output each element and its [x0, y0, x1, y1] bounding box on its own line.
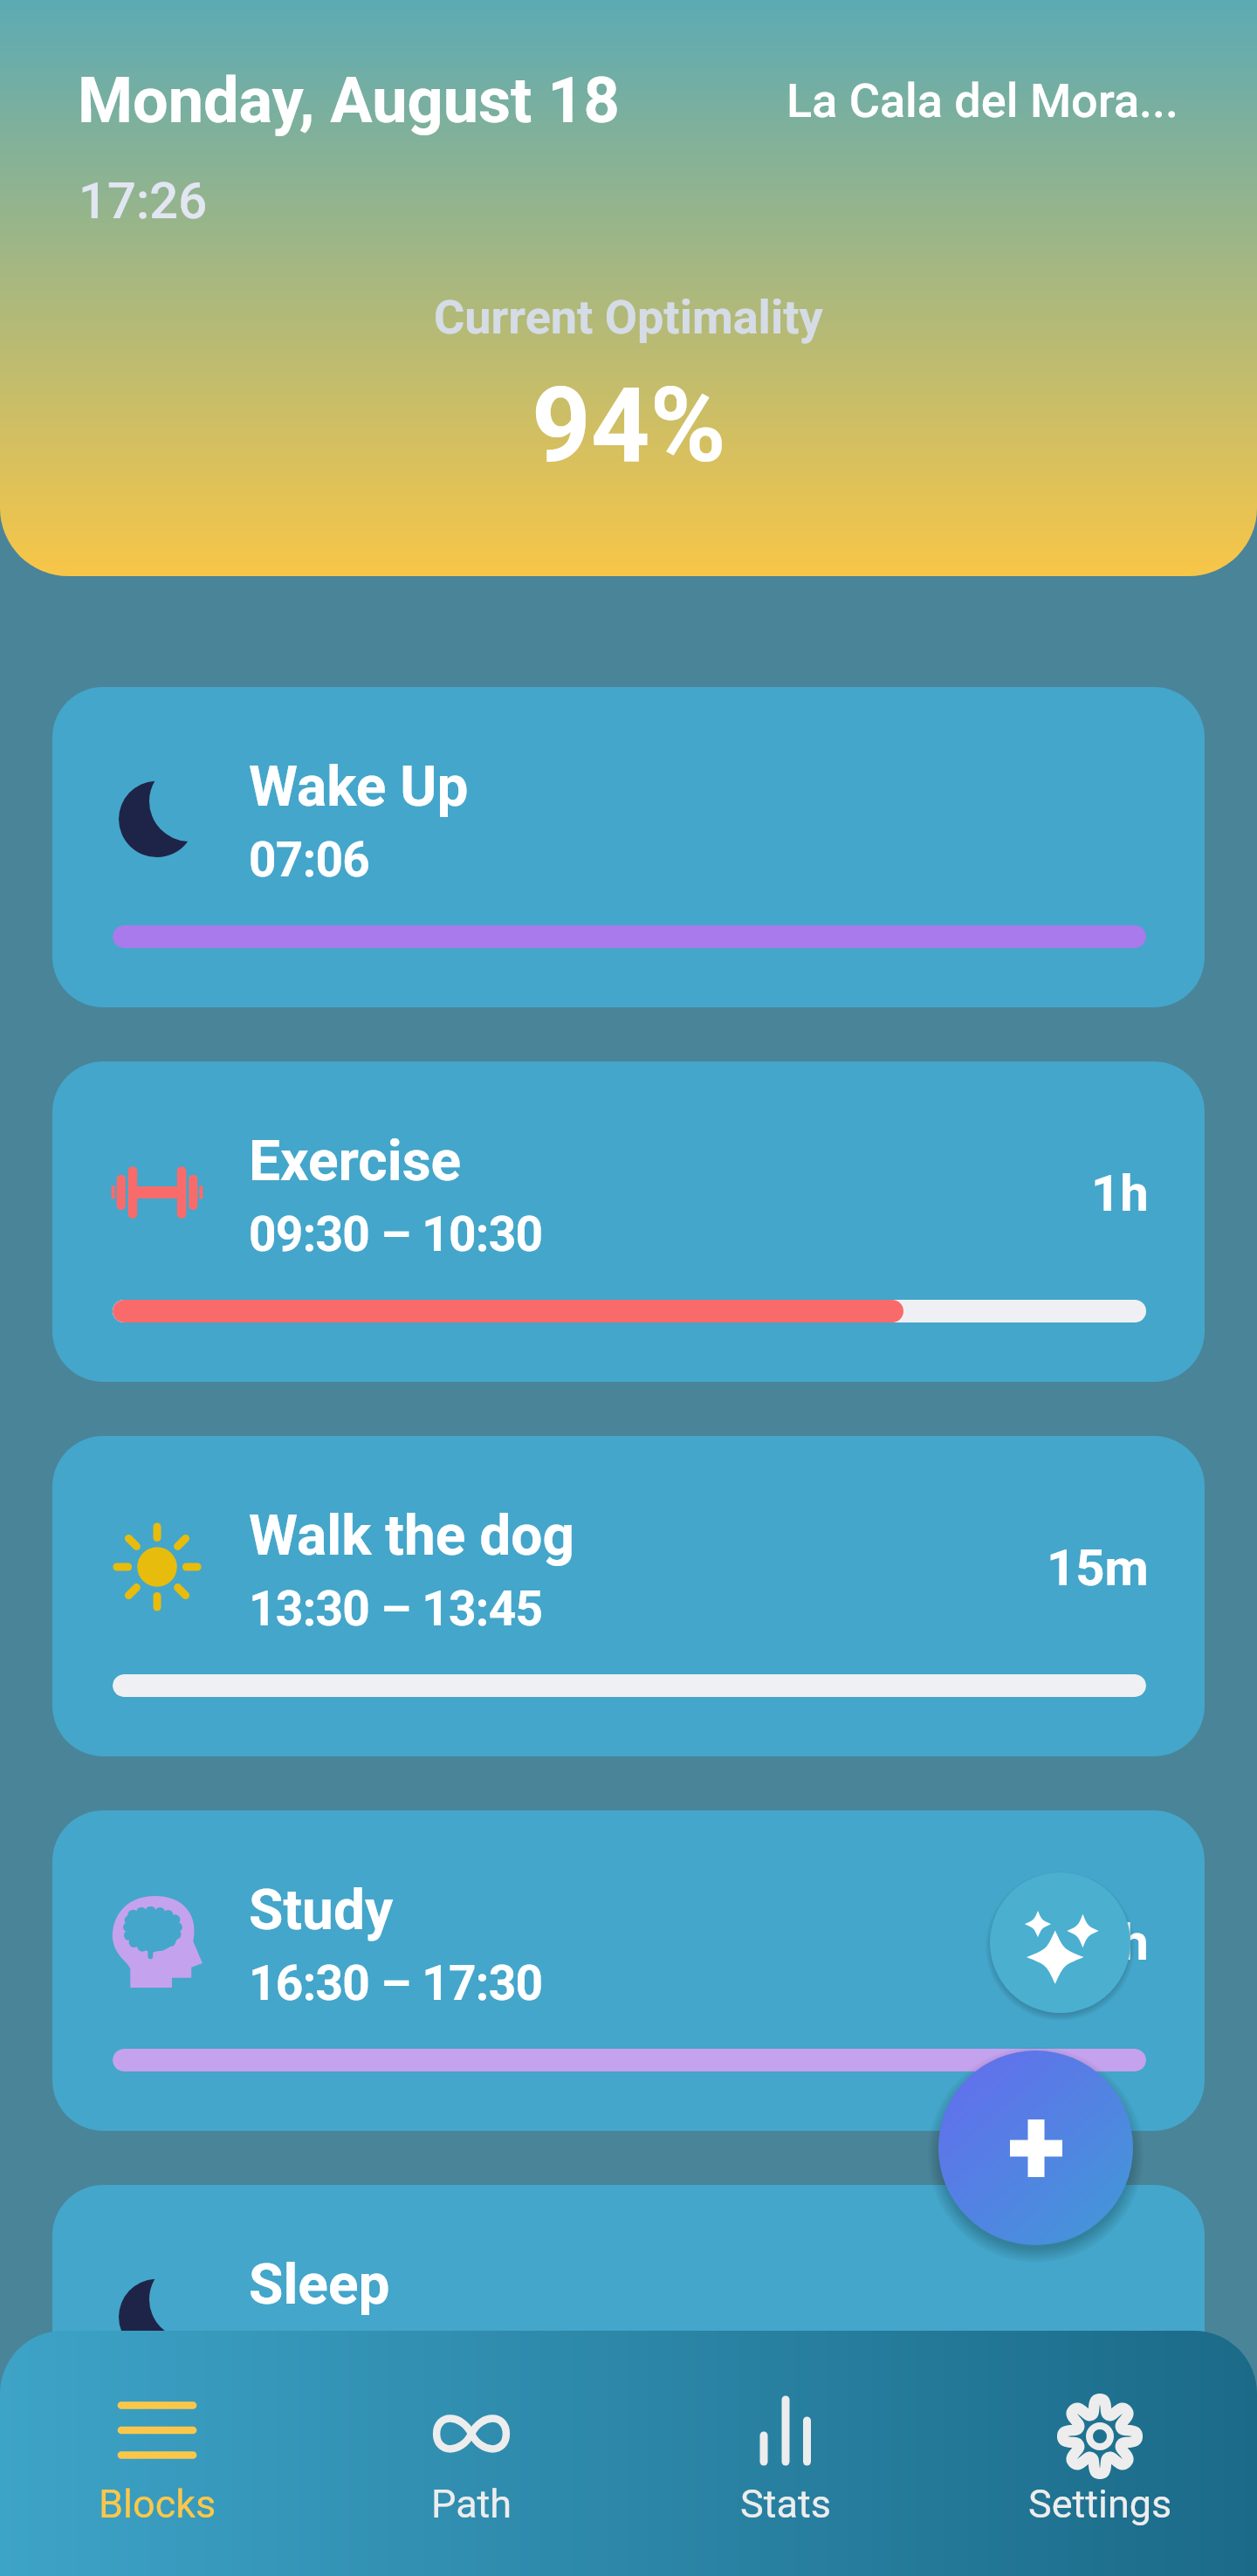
staticText: 23:00 – 07:00: [249, 2330, 543, 2386]
button[interactable]: Blocks: [0, 2331, 314, 2576]
staticText: La Cala del Mora...: [786, 73, 1178, 128]
staticText: Monday, August 18: [78, 64, 620, 137]
staticText: Settings: [1028, 2481, 1172, 2527]
staticText: Blocks: [99, 2481, 216, 2527]
button[interactable]: Settings: [943, 2331, 1257, 2576]
staticText: 07:06: [249, 832, 370, 888]
staticText: Study: [249, 1878, 394, 1943]
button[interactable]: Stats: [628, 2331, 943, 2576]
button[interactable]: Exercise: [52, 1061, 1205, 1382]
staticText: 15m: [1047, 1538, 1149, 1597]
button[interactable]: Sleep: [52, 2185, 1205, 2505]
staticText: Walk the dog: [249, 1503, 574, 1569]
staticText: 1h: [1091, 1913, 1149, 1972]
button[interactable]: Walk the dog: [52, 1436, 1205, 1756]
staticText: Stats: [740, 2481, 831, 2527]
staticText: 17:26: [79, 171, 208, 230]
staticText: Current Optimality: [434, 290, 823, 345]
staticText: Sleep: [249, 2252, 390, 2318]
staticText: 16:30 – 17:30: [249, 1955, 543, 2011]
button[interactable]: Add block: [938, 2050, 1133, 2245]
button[interactable]: AI suggest: [990, 1872, 1130, 2013]
button[interactable]: Study: [52, 1810, 1205, 2131]
button[interactable]: Path: [314, 2331, 628, 2576]
button[interactable]: Wake Up: [52, 687, 1205, 1007]
staticText: 94%: [532, 366, 726, 486]
staticText: 09:30 – 10:30: [249, 1206, 543, 1262]
staticText: Exercise: [249, 1129, 462, 1194]
staticText: Path: [431, 2481, 512, 2527]
staticText: 1h: [1091, 1164, 1149, 1223]
staticText: 13:30 – 13:45: [249, 1581, 543, 1637]
staticText: Wake Up: [249, 754, 469, 820]
